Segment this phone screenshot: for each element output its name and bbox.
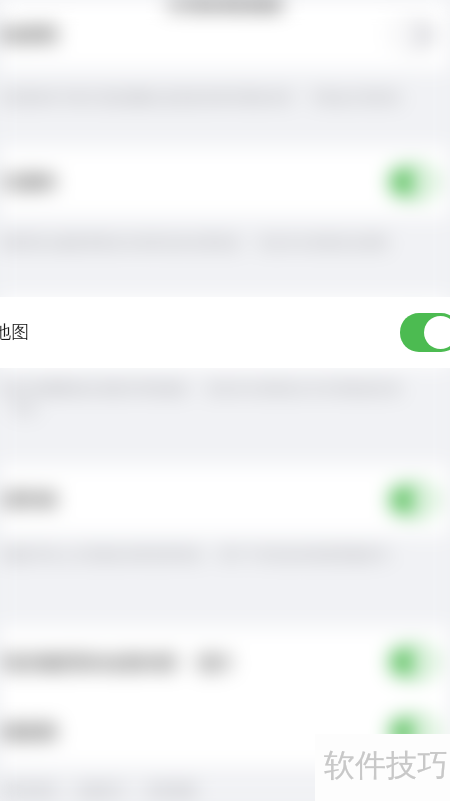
button[interactable]: 读取手机存储空间内全部内容 · 照片 — [0, 627, 450, 697]
staticText: 读取应用列表 — [0, 490, 57, 511]
button[interactable]: 相机拍照权限 — [0, 697, 450, 767]
button[interactable]: 百度地图导航 — [0, 297, 450, 367]
staticText: 百度地图导航 — [0, 322, 57, 343]
button[interactable]: Switch off — [390, 21, 436, 49]
staticText: 手机定位服务 — [0, 172, 57, 193]
staticText: 应用权限管理 — [168, 0, 282, 10]
button[interactable]: Switch on — [390, 648, 436, 676]
button[interactable]: Switch on — [390, 318, 436, 346]
button[interactable]: Switch on — [390, 718, 436, 746]
button[interactable]: 读取应用列表 — [0, 465, 450, 535]
staticText: 允许应用访问地图数据以便提供导航服务 · 包括后台持续定位与行程轨迹记录等内容 … — [0, 379, 405, 417]
button[interactable]: Switch on — [390, 486, 436, 514]
staticText: 读取手机存储空间内全部内容 · 照片 — [0, 651, 233, 674]
button[interactable]: Switch on — [400, 313, 450, 352]
button[interactable]: 应用通知管理 — [0, 0, 450, 70]
button[interactable]: Switch on — [390, 168, 436, 196]
button[interactable]: 地图 — [0, 297, 450, 368]
staticText: 软件技巧 — [324, 746, 448, 785]
staticText: 地图 — [0, 321, 29, 344]
staticText: 相机拍照权限 — [0, 722, 57, 743]
staticText: 允许应用使用相机 · 拍摄照片 · 录制视频 — [0, 781, 405, 799]
button[interactable]: 手机定位服务 — [0, 147, 450, 217]
staticText: 允许应用读取手机上已安装的全部应用列表 · 用于个性化的内容推荐服务等 · 可以 — [0, 545, 405, 582]
staticText: 应用通知管理 — [0, 25, 57, 46]
